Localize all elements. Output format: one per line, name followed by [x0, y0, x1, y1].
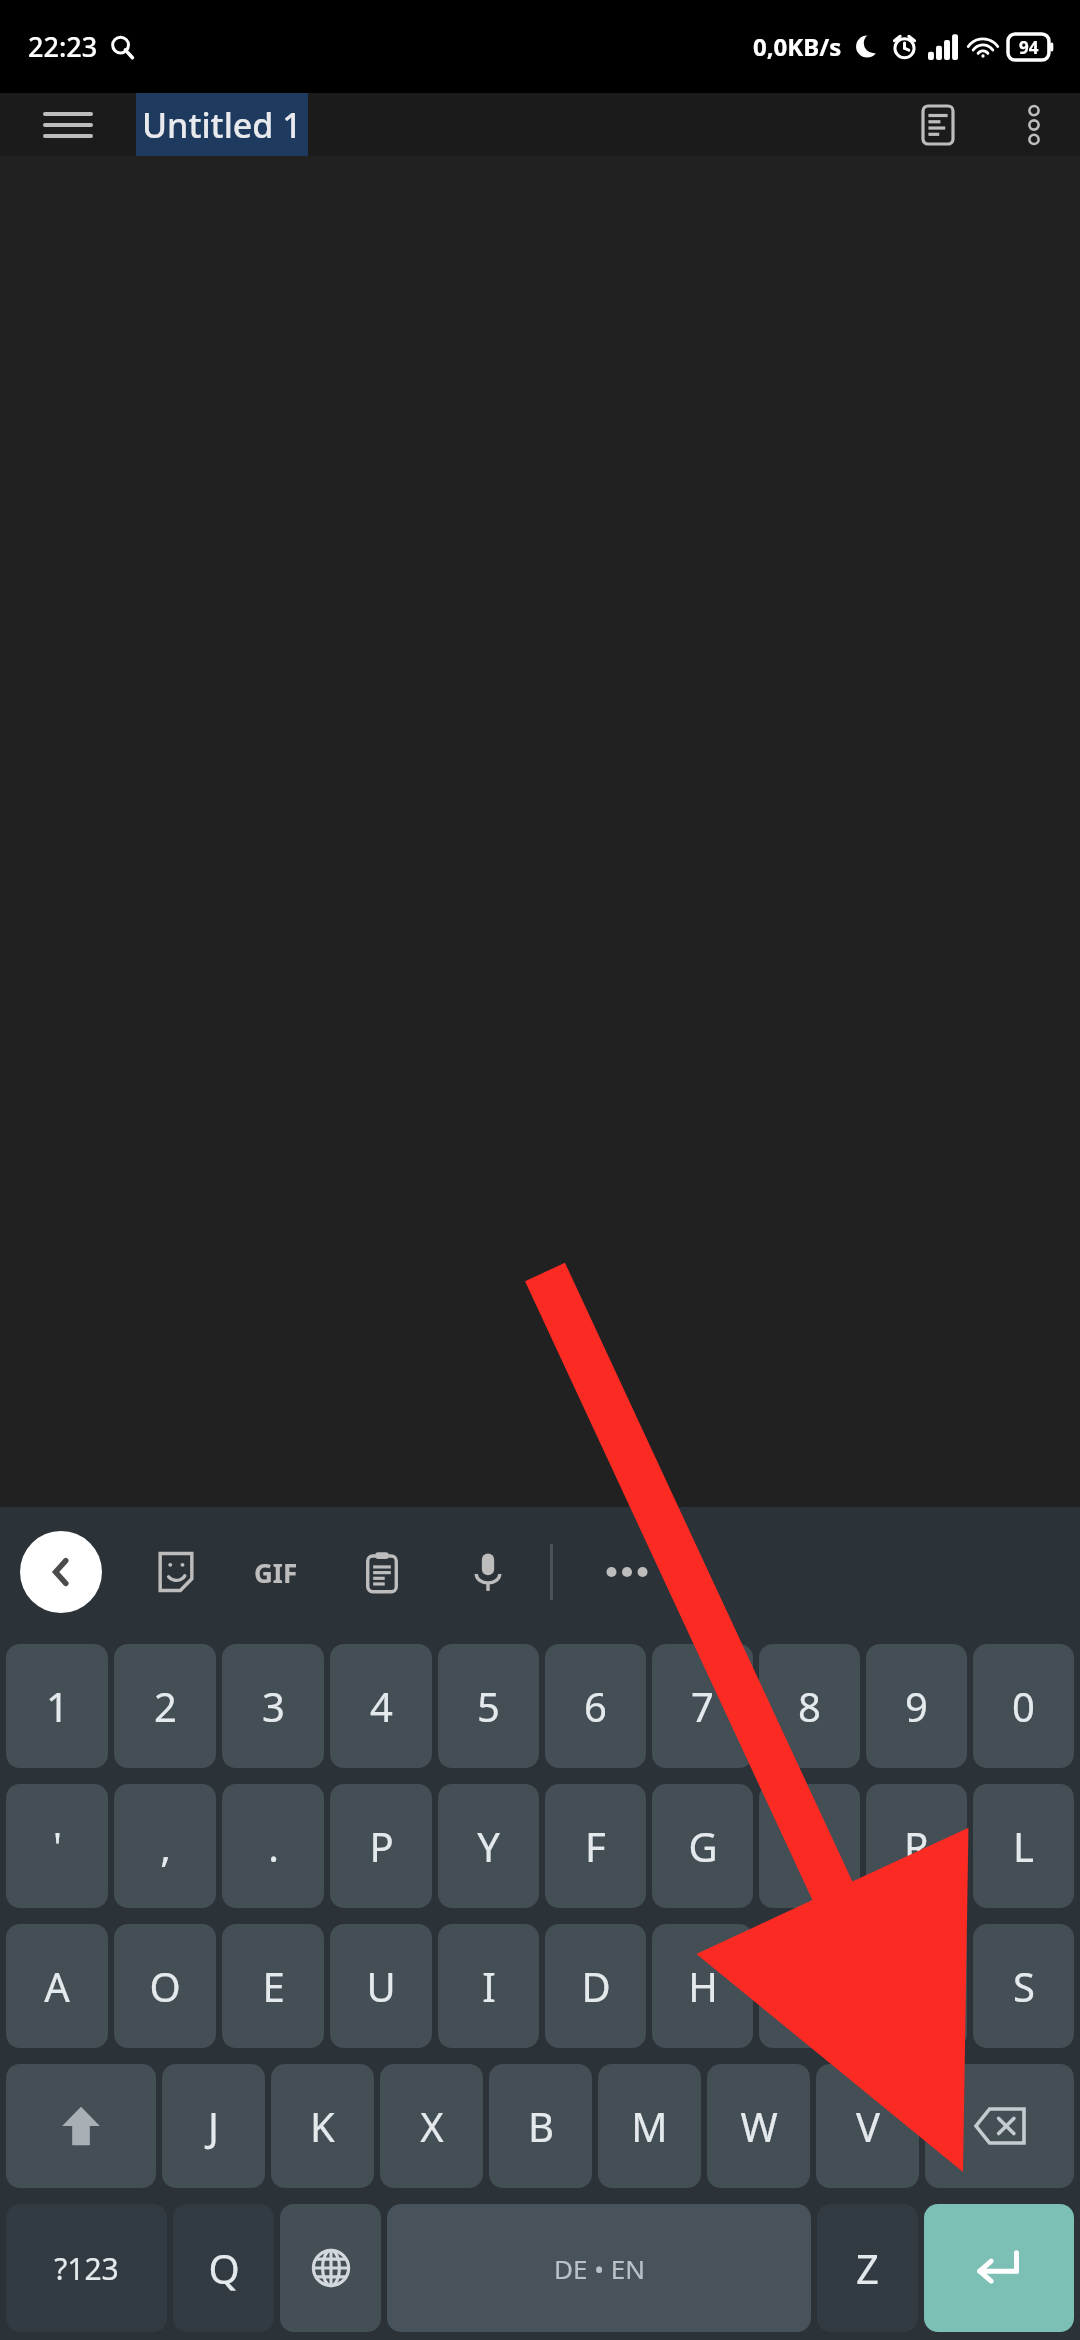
button[interactable]: C — [759, 1784, 860, 1908]
button[interactable]: Untitled 1 — [136, 93, 308, 156]
staticText: ?123 — [54, 2248, 119, 2289]
button[interactable]: Y — [438, 1784, 539, 1908]
button[interactable]: E — [222, 1924, 324, 2048]
staticText: V — [856, 2099, 880, 2153]
button[interactable]: O — [114, 1924, 216, 2048]
staticText: L — [1013, 1819, 1034, 1873]
button[interactable]: ?123 — [6, 2204, 167, 2332]
staticText: A — [44, 1959, 70, 2013]
staticText: W — [740, 2099, 778, 2153]
button[interactable]: Backspace — [925, 2064, 1074, 2188]
staticText: F — [585, 1819, 606, 1873]
button[interactable]: Q — [173, 2204, 274, 2332]
button[interactable]: L — [973, 1784, 1074, 1908]
button[interactable]: 6 — [545, 1644, 646, 1768]
button[interactable]: 9 — [866, 1644, 967, 1768]
staticText: C — [797, 1819, 823, 1873]
button[interactable]: V — [816, 2064, 919, 2188]
staticText: GIF — [254, 1555, 298, 1590]
staticText: 94 — [1019, 36, 1039, 59]
staticText: S — [1013, 1959, 1035, 2013]
button[interactable]: 7 — [652, 1644, 753, 1768]
staticText: ' — [53, 1819, 62, 1873]
button[interactable]: I — [438, 1924, 539, 2048]
staticText: 8 — [798, 1679, 821, 1733]
button[interactable]: ' — [6, 1784, 108, 1908]
button[interactable]: S — [973, 1924, 1074, 2048]
staticText: DE • EN — [554, 2251, 645, 2286]
button[interactable]: R — [866, 1784, 967, 1908]
button[interactable]: U — [330, 1924, 432, 2048]
button[interactable]: J — [162, 2064, 265, 2188]
staticText: H — [688, 1959, 718, 2013]
staticText: 4 — [370, 1679, 393, 1733]
button[interactable]: P — [330, 1784, 432, 1908]
staticText: 0 — [1012, 1679, 1035, 1733]
button[interactable]: N — [866, 1924, 967, 2048]
button[interactable]: DE • EN — [387, 2204, 811, 2332]
button[interactable]: 4 — [330, 1644, 432, 1768]
button[interactable]: 3 — [222, 1644, 324, 1768]
staticText: R — [904, 1819, 929, 1873]
staticText: 5 — [477, 1679, 500, 1733]
staticText: P — [369, 1819, 394, 1873]
button[interactable]: Back — [20, 1531, 102, 1613]
button[interactable]: F — [545, 1784, 646, 1908]
staticText: B — [528, 2099, 554, 2153]
staticText: D — [581, 1959, 611, 2013]
button[interactable]: GIF — [240, 1536, 312, 1608]
staticText: Y — [477, 1819, 500, 1873]
staticText: 0,0KB/s — [753, 30, 842, 63]
button[interactable]: 1 — [6, 1644, 108, 1768]
button[interactable]: 2 — [114, 1644, 216, 1768]
button[interactable]: A — [6, 1924, 108, 2048]
staticText: Q — [208, 2241, 240, 2295]
button[interactable]: H — [652, 1924, 753, 2048]
button[interactable]: More options — [988, 93, 1080, 156]
button[interactable]: Switch language — [280, 2204, 381, 2332]
button[interactable]: Z — [817, 2204, 918, 2332]
staticText: G — [688, 1819, 718, 1873]
button[interactable]: Clipboard — [346, 1536, 418, 1608]
button[interactable]: Stickers — [140, 1536, 212, 1608]
staticText: X — [420, 2099, 444, 2153]
button[interactable]: Voice input — [452, 1536, 524, 1608]
button[interactable]: G — [652, 1784, 753, 1908]
button[interactable]: , — [114, 1784, 216, 1908]
button[interactable]: Shift — [6, 2064, 156, 2188]
button[interactable]: W — [707, 2064, 810, 2188]
staticText: M — [631, 2099, 668, 2153]
staticText: 1 — [46, 1679, 69, 1733]
button[interactable]: X — [380, 2064, 483, 2188]
staticText: 6 — [584, 1679, 607, 1733]
staticText: Z — [856, 2241, 879, 2295]
button[interactable]: Outline — [888, 93, 988, 156]
staticText: U — [366, 1959, 396, 2013]
staticText: 9 — [905, 1679, 928, 1733]
staticText: 2 — [154, 1679, 177, 1733]
button[interactable]: Menu — [0, 93, 136, 156]
button[interactable]: T — [759, 1924, 860, 2048]
button[interactable]: D — [545, 1924, 646, 2048]
staticText: 7 — [691, 1679, 714, 1733]
button[interactable]: K — [271, 2064, 374, 2188]
staticText: E — [262, 1959, 285, 2013]
staticText: 3 — [262, 1679, 285, 1733]
button[interactable]: B — [489, 2064, 592, 2188]
staticText: 22:23 — [28, 28, 98, 65]
button[interactable]: 8 — [759, 1644, 860, 1768]
button[interactable]: M — [598, 2064, 701, 2188]
button[interactable]: 5 — [438, 1644, 539, 1768]
staticText: J — [208, 2099, 219, 2153]
button[interactable]: 0 — [973, 1644, 1074, 1768]
button[interactable]: Enter — [924, 2204, 1074, 2332]
staticText: O — [149, 1959, 181, 2013]
staticText: K — [310, 2099, 335, 2153]
button[interactable]: . — [222, 1784, 324, 1908]
staticText: , — [160, 1819, 171, 1873]
button[interactable]: More — [591, 1536, 663, 1608]
staticText: I — [482, 1959, 496, 2013]
staticText: Untitled 1 — [142, 102, 302, 148]
